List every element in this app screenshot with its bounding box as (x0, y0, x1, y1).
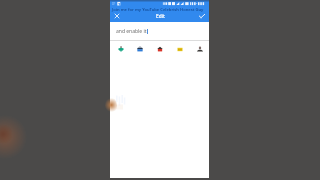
staticText: Join me for my YouTube Celebrish Honest … (112, 7, 204, 13)
staticText: Edit (156, 13, 165, 20)
button[interactable]: Location (111, 42, 130, 55)
button[interactable]: Home (150, 42, 170, 55)
button[interactable]: Close (110, 12, 124, 19)
button[interactable]: Contact (190, 42, 210, 55)
button[interactable]: Done (195, 12, 209, 19)
staticText: and enable it (116, 28, 147, 35)
button[interactable]: Favourite (170, 42, 190, 55)
button[interactable]: Work (130, 42, 150, 55)
